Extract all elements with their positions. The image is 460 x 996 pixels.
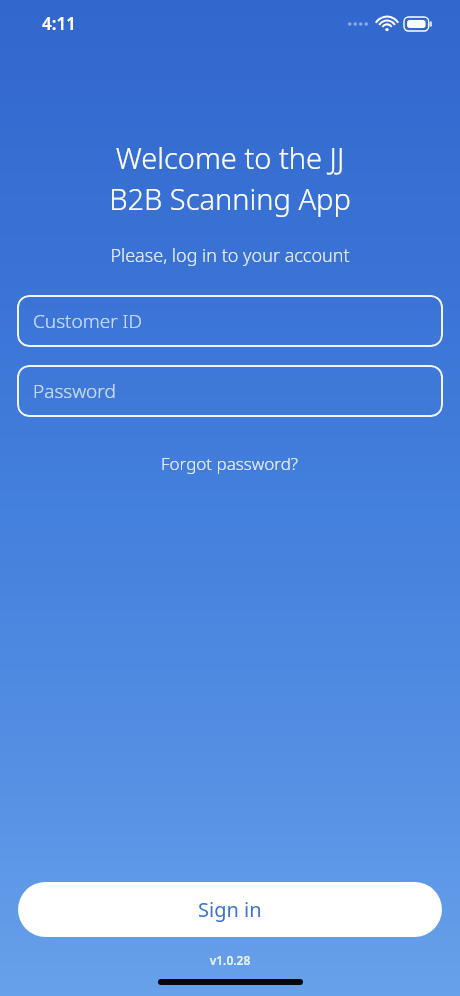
staticText: v1.0.28 [0, 952, 460, 968]
button[interactable]: Password [17, 365, 443, 417]
staticText: Password [33, 378, 116, 404]
staticText: Sign in [198, 896, 262, 923]
staticText: Customer ID [33, 308, 143, 334]
staticText: Forgot password? [161, 452, 299, 475]
staticText: 4:11 [42, 12, 76, 35]
button[interactable]: Forgot password? [151, 447, 309, 480]
button[interactable]: Sign in [18, 882, 442, 937]
staticText: Please, log in to your account [0, 243, 460, 268]
button[interactable]: Customer ID [17, 295, 443, 347]
staticText: Welcome to the JJ B2B Scanning App [0, 138, 460, 219]
